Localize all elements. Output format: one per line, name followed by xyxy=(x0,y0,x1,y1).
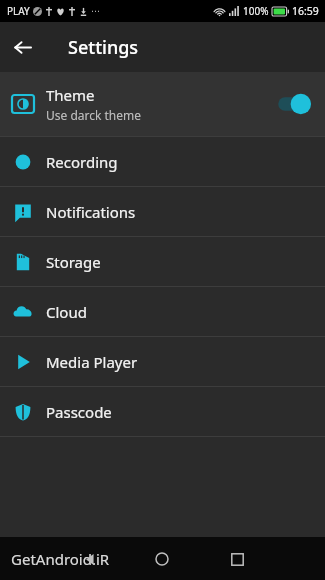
button[interactable]: Storage xyxy=(0,237,325,286)
staticText: GetAndroid.iR xyxy=(11,549,110,569)
staticText: PLAY xyxy=(7,4,30,18)
staticText: Notifications xyxy=(46,202,136,222)
button[interactable]: Theme xyxy=(0,72,325,136)
button[interactable]: Notifications xyxy=(0,187,325,236)
staticText: Storage xyxy=(46,252,101,272)
staticText: Use darck theme xyxy=(46,107,142,123)
staticText: Settings xyxy=(68,35,139,60)
staticText: Cloud xyxy=(46,302,87,322)
staticText: ⋯ xyxy=(91,6,100,16)
staticText: Media Player xyxy=(46,352,138,372)
button[interactable]: Back xyxy=(0,25,44,69)
button[interactable]: Recording xyxy=(0,137,325,186)
button[interactable]: Passcode xyxy=(0,387,325,436)
button[interactable]: Media Player xyxy=(0,337,325,386)
staticText: 16:59 xyxy=(292,4,319,18)
staticText: Theme xyxy=(46,85,95,105)
button[interactable]: Cloud xyxy=(0,287,325,336)
button[interactable]: Back xyxy=(72,541,108,577)
button[interactable]: Toggle dark theme xyxy=(269,87,311,121)
button[interactable]: Recent apps xyxy=(219,541,255,577)
button[interactable]: Home xyxy=(144,541,180,577)
staticText: 100% xyxy=(243,4,269,18)
staticText: Recording xyxy=(46,152,118,172)
staticText: Passcode xyxy=(46,402,112,422)
